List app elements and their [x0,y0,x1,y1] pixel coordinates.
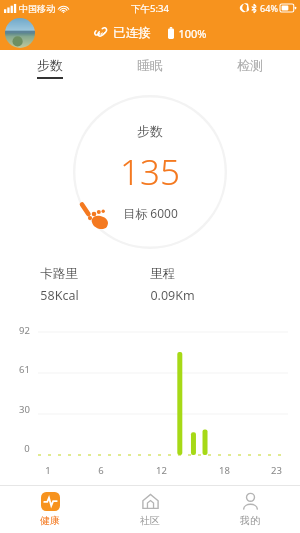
staticText: 社区 [140,514,160,527]
staticText: 步数 [37,57,63,73]
staticText: 目标 6000 [123,205,178,221]
staticText: 我的 [240,514,260,527]
staticText: 92 [19,324,30,337]
staticText: 23 [271,464,282,477]
staticText: 100% [178,26,207,41]
button[interactable]: Connected [93,25,151,41]
staticText: 中国移动 [19,3,55,14]
staticText: 已连接 [113,25,151,41]
button[interactable]: 检测 [200,50,300,86]
staticText: 睡眠 [137,57,163,73]
button[interactable]: 睡眠 [100,50,200,86]
button[interactable]: Profile avatar [5,18,35,48]
staticText: 61 [19,363,30,376]
staticText: 58Kcal [40,287,79,304]
button[interactable]: 步数 [0,50,100,86]
staticText: 步数 [137,123,163,139]
staticText: 135 [120,148,180,196]
staticText: 里程 [150,266,175,282]
staticText: 1 [45,464,51,477]
staticText: 30 [19,403,30,416]
button[interactable]: 我的 [200,486,300,533]
staticText: 0.09Km [150,287,195,304]
staticText: 检测 [237,57,263,73]
staticText: 12 [156,464,167,477]
staticText: 0 [24,442,30,455]
staticText: 6 [98,464,104,477]
button[interactable]: 健康 [0,486,100,533]
staticText: 卡路里 [40,266,78,282]
staticText: 64% [260,2,278,14]
staticText: 18 [219,464,230,477]
staticText: 下午5:34 [131,2,169,15]
staticText: 健康 [40,514,60,527]
button[interactable]: 社区 [100,486,200,533]
